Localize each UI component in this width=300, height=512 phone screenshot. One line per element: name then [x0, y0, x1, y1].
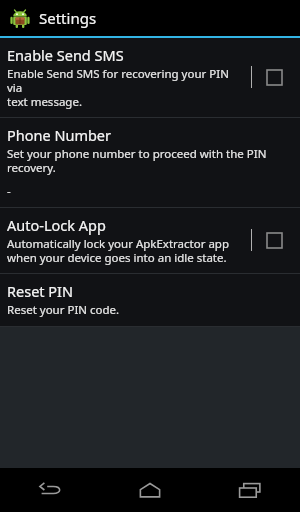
staticText: Set your phone number to proceed with th…: [7, 146, 267, 175]
staticText: Enable Send SMS: [7, 45, 124, 65]
button[interactable]: Enable Send SMS: [0, 38, 300, 117]
staticText: Enable Send SMS for recovering your PIN …: [7, 66, 243, 109]
button[interactable]: Home: [100, 468, 200, 512]
staticText: -: [7, 183, 11, 199]
button[interactable]: Auto-Lock App: [0, 208, 300, 273]
staticText: Settings: [39, 8, 97, 28]
staticText: Phone Number: [7, 125, 112, 145]
staticText: Auto-Lock App: [7, 215, 106, 235]
staticText: Automatically lock your ApkExtractor app…: [7, 236, 230, 265]
button[interactable]: Recent apps: [200, 468, 300, 512]
button[interactable]: Back: [0, 468, 100, 512]
button[interactable]: Settings: [0, 0, 300, 36]
staticText: Reset your PIN code.: [7, 302, 120, 318]
button[interactable]: Reset PIN: [0, 274, 300, 326]
button[interactable]: Toggle Enable Send SMS: [261, 64, 287, 90]
button[interactable]: Phone Number: [0, 118, 300, 207]
button[interactable]: Toggle Auto-Lock App: [261, 227, 287, 253]
staticText: Reset PIN: [7, 281, 74, 301]
